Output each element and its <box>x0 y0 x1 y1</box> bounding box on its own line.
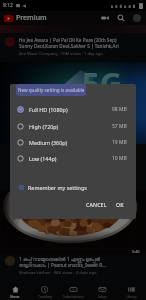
staticText: 1 കപ്പ് റവയുണ്ടെങ്കിൽ 1 എണ്ണം ഉപ്പേരി <box>19 256 100 262</box>
button[interactable]: Medium (360p) <box>10 134 136 150</box>
button[interactable]: Inbox <box>88 283 117 300</box>
button[interactable]: Trending <box>30 283 59 300</box>
staticText: Low (144p) <box>29 155 57 162</box>
staticText: New quality setting is available <box>18 87 85 93</box>
staticText: Shahnas kitchen · 96K views · 4 days ago <box>19 270 97 276</box>
staticText: 10 MB <box>112 155 127 162</box>
staticText: Premium <box>16 13 47 23</box>
staticText: Zee Music Company · 10M views · 1 day ag… <box>19 51 103 57</box>
staticText: Inbox <box>98 294 107 298</box>
staticText: Trending <box>38 294 52 298</box>
staticText: Medium (360p) <box>29 139 68 146</box>
staticText: Remember my settings <box>28 184 87 191</box>
staticText: Library <box>126 294 137 298</box>
staticText: തയ്യാറാക്കാം | Peanut snacks_Sweet R... <box>19 262 106 268</box>
button[interactable]: New quality setting is available <box>16 84 86 96</box>
staticText: 19 MB <box>112 139 127 146</box>
staticText: Sunny Deol,Karan Deol,Sakher S | Tanishk… <box>19 43 119 49</box>
button[interactable]: OK <box>113 199 127 210</box>
button[interactable]: CANCEL <box>83 199 110 210</box>
staticText: OK <box>116 201 124 208</box>
button[interactable]: Account <box>133 14 141 22</box>
button[interactable]: Cast <box>101 14 109 22</box>
button[interactable]: Library <box>117 283 146 300</box>
button[interactable]: Ho Jee Awara | Pal Pal Dil Ke Paas (20th… <box>0 33 146 58</box>
button[interactable]: Low (144p) <box>10 150 136 166</box>
staticText: Home <box>10 294 20 298</box>
button[interactable]: Search <box>117 14 125 22</box>
button[interactable]: Subscriptions <box>59 283 88 300</box>
staticText: 5:40 <box>132 249 140 254</box>
staticText: CANCEL <box>86 201 107 208</box>
staticText: 98 MB <box>112 106 127 113</box>
staticText: Full HD (1080p) <box>29 106 68 113</box>
staticText: Ho Jee Awara | Pal Pal Dil Ke Paas (20th… <box>19 37 117 43</box>
button[interactable]: 1 കപ്പ് റവയുണ്ടെങ്കിൽ 1 എണ്ണം ഉപ്പേരി <box>0 254 146 281</box>
button[interactable]: Home <box>0 283 30 300</box>
button[interactable]: Remember my settings <box>10 180 136 195</box>
staticText: 57 MB <box>112 123 127 130</box>
staticText: 5G <box>82 62 123 104</box>
staticText: Subscriptions <box>63 294 84 298</box>
button[interactable]: Full HD (1080p) <box>10 101 136 117</box>
staticText: 8:12 <box>3 2 13 9</box>
staticText: High (720p) <box>29 123 59 130</box>
button[interactable]: High (720p) <box>10 118 136 134</box>
